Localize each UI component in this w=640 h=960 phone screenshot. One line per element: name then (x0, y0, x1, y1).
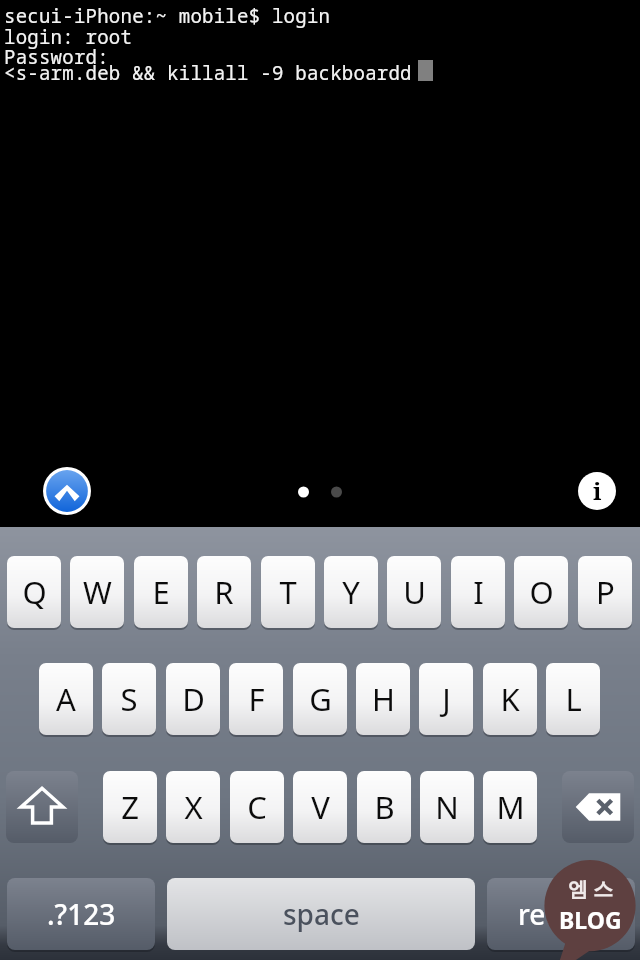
button[interactable]: H (356, 663, 410, 735)
staticText: E (152, 571, 170, 613)
staticText: <s-arm.deb && killall -9 backboardd (4, 60, 412, 86)
button[interactable]: M (483, 771, 537, 843)
staticText: login: root (4, 24, 133, 50)
button[interactable]: Shift (6, 771, 78, 843)
button[interactable]: E (134, 556, 188, 628)
staticText: space (283, 895, 360, 933)
button[interactable]: D (166, 663, 220, 735)
staticText: i (593, 474, 602, 507)
button[interactable]: space (167, 878, 475, 950)
button[interactable]: Scroll up (43, 467, 91, 515)
button[interactable]: J (419, 663, 473, 735)
staticText: B (374, 786, 395, 828)
staticText: F (248, 678, 265, 720)
staticText: Q (22, 571, 47, 613)
button[interactable]: A (39, 663, 93, 735)
button[interactable]: return (487, 878, 635, 950)
staticText: return (518, 895, 604, 933)
staticText: BLOG (559, 904, 622, 935)
button[interactable]: T (261, 556, 315, 628)
staticText: .?123 (47, 895, 116, 933)
button[interactable]: L (546, 663, 600, 735)
staticText: T (279, 571, 297, 613)
staticText: D (182, 678, 205, 720)
button[interactable]: K (483, 663, 537, 735)
button[interactable]: P (578, 556, 632, 628)
button[interactable]: .?123 (7, 878, 155, 950)
button[interactable]: S (102, 663, 156, 735)
button[interactable]: W (70, 556, 124, 628)
staticText: U (403, 571, 426, 613)
staticText: Password: (4, 44, 109, 70)
button[interactable]: I (451, 556, 505, 628)
staticText: secui-iPhone:~ mobile$ login (4, 3, 331, 29)
button[interactable]: Y (324, 556, 378, 628)
button[interactable]: C (230, 771, 284, 843)
staticText: I (473, 571, 484, 613)
button[interactable]: U (387, 556, 441, 628)
staticText: S (120, 678, 138, 720)
staticText: W (83, 571, 112, 613)
staticText: L (565, 678, 582, 720)
staticText: H (372, 678, 395, 720)
button[interactable]: Q (7, 556, 61, 628)
button[interactable]: N (420, 771, 474, 843)
button[interactable]: V (293, 771, 347, 843)
staticText: Y (342, 571, 360, 613)
staticText: R (214, 571, 234, 613)
staticText: G (309, 678, 332, 720)
staticText: V (311, 786, 330, 828)
staticText: N (435, 786, 459, 828)
button[interactable]: Info (578, 472, 616, 510)
staticText: X (184, 786, 203, 828)
button[interactable]: X (166, 771, 220, 843)
button[interactable]: Z (103, 771, 157, 843)
button[interactable]: F (229, 663, 283, 735)
button[interactable]: B (357, 771, 411, 843)
staticText: P (596, 571, 615, 613)
staticText: O (529, 571, 554, 613)
button[interactable]: G (293, 663, 347, 735)
button[interactable]: Backspace (562, 771, 634, 843)
button[interactable]: R (197, 556, 251, 628)
staticText: Z (121, 786, 139, 828)
button[interactable]: O (514, 556, 568, 628)
staticText: C (247, 786, 267, 828)
staticText: M (496, 786, 525, 828)
staticText: J (442, 678, 451, 720)
staticText: 엠 스 (568, 875, 614, 902)
staticText: A (56, 678, 76, 720)
staticText: K (500, 678, 520, 720)
